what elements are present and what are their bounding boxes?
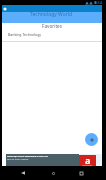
staticText: Banking Technology xyxy=(8,32,42,37)
button[interactable]: Recent apps xyxy=(77,169,85,177)
staticText: a xyxy=(85,154,91,166)
button[interactable]: Back xyxy=(19,169,27,177)
staticText: Favorites xyxy=(42,23,63,29)
staticText: Technology World xyxy=(30,11,73,18)
staticText: test ad from AdMob. xyxy=(7,158,29,161)
staticText: AdChoices xyxy=(82,164,93,167)
button[interactable]: a xyxy=(79,155,96,167)
button[interactable]: Home xyxy=(49,169,57,177)
button[interactable]: Banking Technology xyxy=(2,28,102,41)
button[interactable]: Add xyxy=(85,133,98,146)
staticText: 3:34 xyxy=(94,0,102,5)
staticText: Nice job! You're displaying a 320 x 50 xyxy=(7,155,48,158)
